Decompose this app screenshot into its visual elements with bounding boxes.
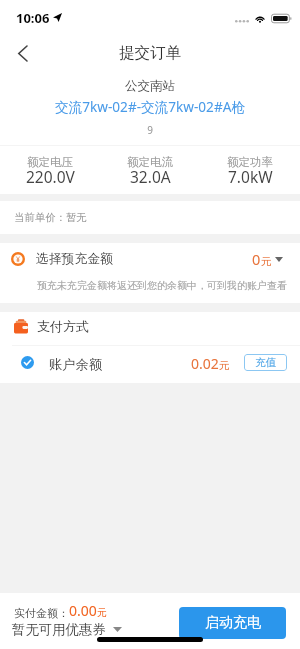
staticText: 0 xyxy=(252,249,261,269)
staticText: 元 xyxy=(97,606,107,619)
staticText: 元 xyxy=(219,359,230,372)
staticText: 提交订单 xyxy=(119,43,181,63)
staticText: 实付金额： xyxy=(14,606,69,620)
staticText: 预充未充完金额将返还到您的余额中，可到我的账户查看 xyxy=(37,279,287,292)
staticText: 220.0V xyxy=(26,166,75,187)
staticText: 选择预充金额 xyxy=(36,251,113,267)
button[interactable]: 账户余额 xyxy=(0,350,300,374)
staticText: 暂无可用优惠券 xyxy=(12,621,106,638)
button[interactable]: 充值 xyxy=(244,354,287,371)
staticText: 0.00 xyxy=(69,601,97,620)
staticText: 9 xyxy=(0,123,300,137)
staticText: 支付方式 xyxy=(37,318,89,334)
staticText: 7.0kW xyxy=(228,166,273,187)
staticText: 额定功率 xyxy=(227,155,273,169)
staticText: 账户余额 xyxy=(49,356,103,373)
staticText: 0.02 xyxy=(191,354,219,373)
button[interactable]: 选择预充金额 xyxy=(0,246,300,272)
staticText: 额定电压 xyxy=(27,155,73,169)
staticText: 交流7kw-02#-交流7kw-02#A枪 xyxy=(0,97,300,116)
staticText: 充值 xyxy=(255,356,276,369)
button[interactable]: 暂无可用优惠券 xyxy=(12,621,122,638)
staticText: 公交南站 xyxy=(0,78,300,94)
button[interactable]: Back xyxy=(0,34,44,72)
staticText: 元 xyxy=(261,255,272,268)
staticText: 额定电流 xyxy=(127,155,173,169)
staticText: 10:06 xyxy=(16,9,50,27)
staticText: 32.0A xyxy=(130,166,171,187)
staticText: 当前单价：暂无 xyxy=(14,211,87,224)
staticText: 启动充电 xyxy=(205,614,261,632)
button[interactable]: 启动充电 xyxy=(179,607,286,639)
